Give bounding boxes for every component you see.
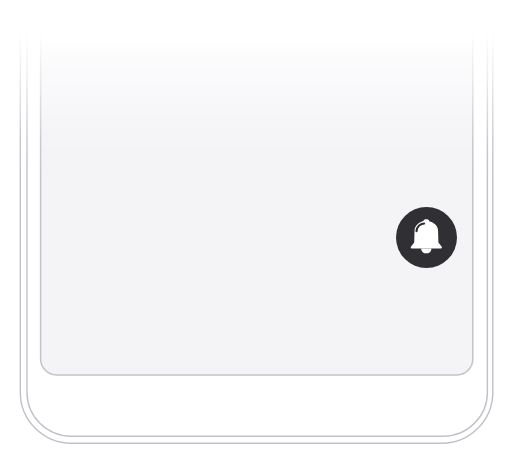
button[interactable]: Notifications xyxy=(396,207,457,268)
